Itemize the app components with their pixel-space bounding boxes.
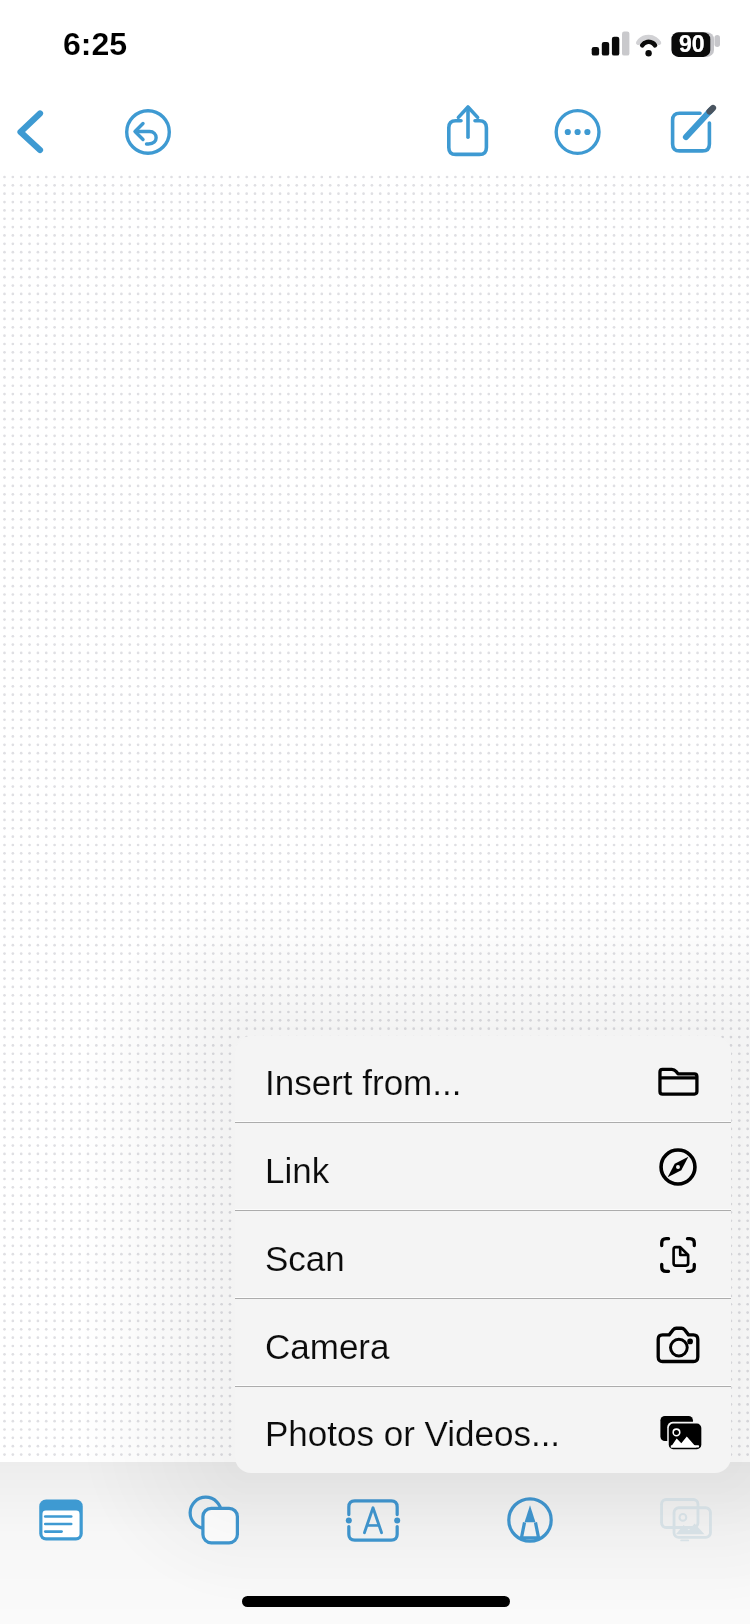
button[interactable]: New note [662, 96, 732, 175]
staticText: Link [265, 1151, 330, 1190]
staticText: Scan [265, 1239, 345, 1278]
button[interactable]: Scan [235, 1211, 731, 1299]
staticText: Insert from... [265, 1063, 462, 1102]
staticText: 6:25 [63, 26, 128, 62]
staticText: 90 [679, 31, 705, 57]
button[interactable]: More options [548, 96, 608, 175]
button[interactable]: Link [235, 1123, 731, 1211]
button[interactable]: Photos or Videos... [235, 1387, 731, 1473]
button[interactable]: Table [171, 1478, 255, 1562]
button[interactable]: Markup [488, 1478, 572, 1562]
staticText: Camera [265, 1327, 390, 1366]
staticText: Photos or Videos... [265, 1414, 561, 1453]
button[interactable]: Back [0, 96, 70, 175]
button[interactable]: Checklist [17, 1478, 101, 1562]
button[interactable]: Media [644, 1478, 728, 1562]
button[interactable]: Share [440, 96, 500, 175]
button[interactable]: Insert from... [235, 1036, 731, 1123]
button[interactable]: Undo [110, 96, 186, 175]
button[interactable]: Format [331, 1478, 415, 1562]
button[interactable]: Camera [235, 1299, 731, 1387]
